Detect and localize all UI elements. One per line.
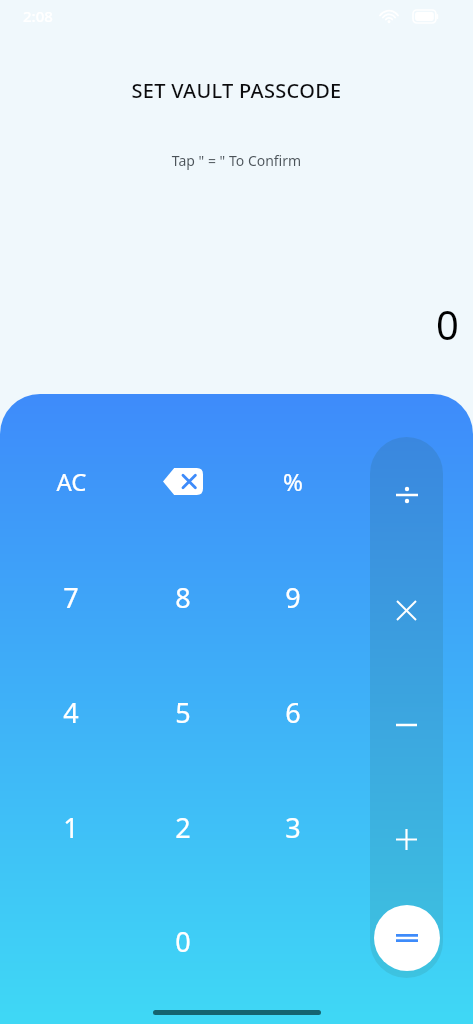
button[interactable]: 5 — [145, 678, 221, 746]
button[interactable]: 2 — [145, 793, 221, 861]
button[interactable]: 6 — [255, 678, 331, 746]
button[interactable]: 8 — [145, 563, 221, 631]
button[interactable]: AC — [33, 447, 109, 515]
staticText: 6 — [285, 694, 301, 731]
staticText: 8 — [175, 579, 191, 616]
button[interactable]: 7 — [33, 563, 109, 631]
button[interactable]: Multiply — [370, 574, 443, 646]
button[interactable]: Equals — [374, 905, 440, 971]
staticText: 2:08 — [23, 6, 53, 26]
staticText: Tap " = " To Confirm — [0, 151, 473, 170]
button[interactable]: 0 — [145, 907, 221, 975]
button[interactable]: Backspace — [155, 453, 211, 509]
staticText: 5 — [175, 694, 191, 731]
button[interactable]: 3 — [255, 793, 331, 861]
button[interactable]: % — [255, 447, 331, 515]
staticText: 1 — [63, 809, 79, 846]
staticText: 9 — [285, 579, 301, 616]
staticText: 7 — [63, 579, 79, 616]
staticText: 0 — [436, 297, 459, 351]
button[interactable]: 1 — [33, 793, 109, 861]
staticText: SET VAULT PASSCODE — [0, 77, 473, 104]
button[interactable]: Minus — [370, 689, 443, 761]
staticText: % — [283, 465, 303, 498]
button[interactable]: 9 — [255, 563, 331, 631]
staticText: 2 — [175, 809, 191, 846]
button[interactable]: 4 — [33, 678, 109, 746]
staticText: 4 — [63, 694, 79, 731]
staticText: 0 — [175, 923, 191, 960]
button[interactable]: Plus — [370, 803, 443, 875]
button[interactable]: Divide — [370, 459, 443, 531]
staticText: 3 — [285, 809, 301, 846]
staticText: AC — [56, 465, 87, 498]
